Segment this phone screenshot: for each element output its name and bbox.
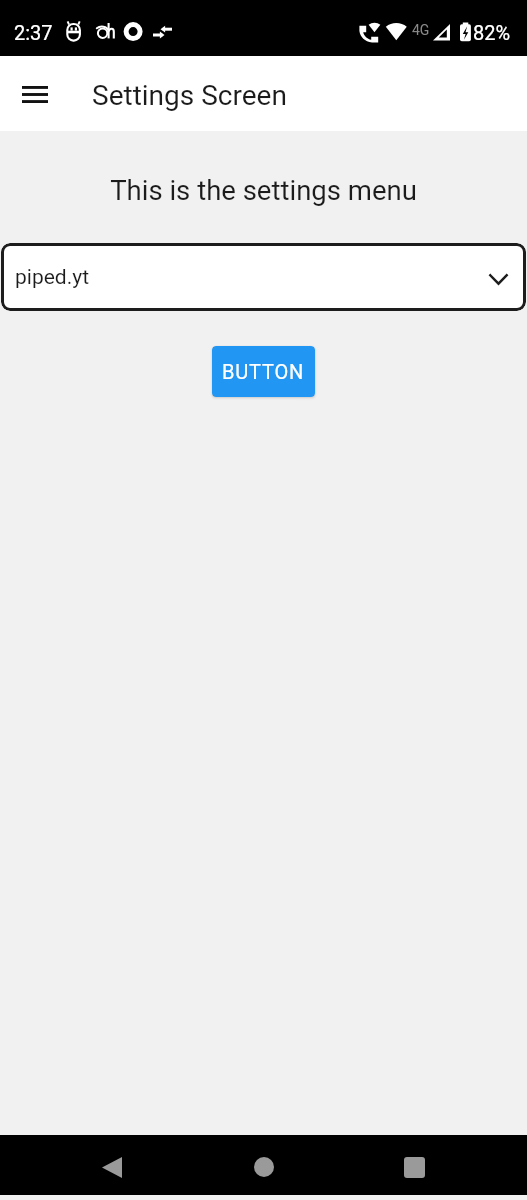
staticText: piped.yt	[15, 265, 90, 290]
staticText: This is the settings menu	[0, 174, 527, 206]
button[interactable]: Recent apps	[378, 1135, 450, 1195]
staticText: 82%	[473, 21, 511, 44]
button[interactable]: Open navigation menu	[7, 66, 63, 122]
staticText: 4G	[412, 22, 430, 38]
staticText: BUTTON	[222, 360, 305, 383]
button[interactable]: Back	[76, 1135, 148, 1195]
staticText: Settings Screen	[92, 79, 287, 112]
button[interactable]: piped.yt	[1, 243, 526, 311]
staticText: 2:37	[14, 21, 53, 44]
button[interactable]: BUTTON	[212, 346, 315, 397]
button[interactable]: Home	[228, 1135, 300, 1195]
